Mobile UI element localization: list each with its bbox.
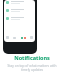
staticText: Notifications <box>14 54 50 61</box>
button[interactable] <box>6 1 33 4</box>
button[interactable] <box>6 17 33 20</box>
staticText: Stay on top of what matters with timely … <box>7 64 57 72</box>
button[interactable] <box>6 9 33 12</box>
